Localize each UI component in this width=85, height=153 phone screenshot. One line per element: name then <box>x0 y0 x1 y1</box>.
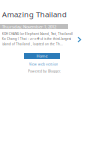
button[interactable]: Home <box>24 53 60 59</box>
staticText: island of Thailand , located on the Th..… <box>2 42 63 46</box>
staticText: Amazing Thailand <box>2 9 67 19</box>
staticText: Powered by Blogger. <box>28 69 61 73</box>
staticText: Home <box>36 53 47 59</box>
staticText: View web version <box>29 62 58 66</box>
staticText: Thursday, November 1, 2012 <box>2 24 56 29</box>
button[interactable]: Older Posts <box>75 34 84 45</box>
button[interactable]: View web version <box>29 62 58 66</box>
staticText: KOH CHANG (or Elephant Island, Trat, Tha… <box>2 32 73 36</box>
staticText: Ko Chang ( Thai : เกาะช้าง) is the third… <box>2 37 71 41</box>
